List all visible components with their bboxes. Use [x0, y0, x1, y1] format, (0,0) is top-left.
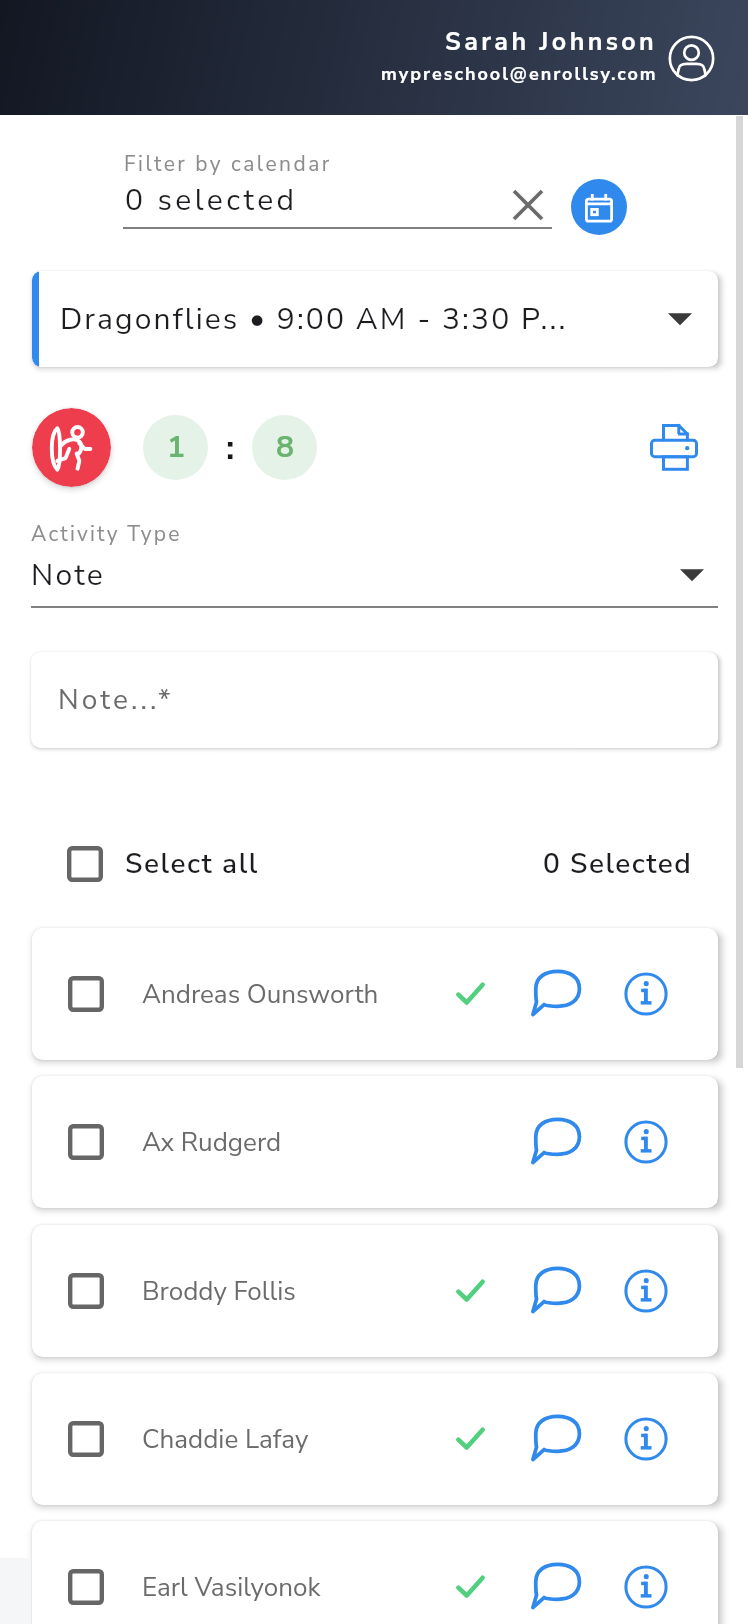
button[interactable]: Info: [616, 1112, 676, 1172]
staticText: Earl Vasilyonok: [142, 1570, 321, 1605]
staticText: Broddy Follis: [142, 1274, 296, 1309]
staticText: Andreas Ounsworth: [142, 977, 379, 1012]
button[interactable]: Message: [525, 964, 585, 1024]
button[interactable]: Info: [616, 1261, 676, 1321]
staticText: 8: [276, 427, 294, 468]
button[interactable]: Check out: [32, 408, 111, 487]
button[interactable]: Info: [616, 1409, 676, 1469]
button[interactable]: Ax Rudgerd: [32, 1076, 718, 1208]
staticText: Activity Type: [31, 520, 182, 549]
staticText: Note...*: [58, 681, 174, 719]
button[interactable]: Info: [616, 1557, 676, 1617]
staticText: 0 selected: [125, 180, 298, 221]
staticText: Note: [31, 555, 105, 596]
button[interactable]: Message: [525, 1409, 585, 1469]
button[interactable]: Andreas Ounsworth: [32, 928, 718, 1060]
staticText: 1: [167, 427, 185, 468]
button[interactable]: Account: [668, 35, 715, 82]
staticText: Dragonflies • 9:00 AM - 3:30 P...: [60, 299, 568, 340]
staticText: Select all: [125, 845, 259, 883]
button[interactable]: Dragonflies • 9:00 AM - 3:30 P...: [32, 271, 718, 367]
staticText: Sarah Johnson: [445, 25, 658, 59]
button[interactable]: Print: [636, 408, 712, 484]
button[interactable]: 1: [143, 415, 208, 480]
staticText: Ax Rudgerd: [142, 1125, 282, 1160]
button[interactable]: 8: [252, 415, 317, 480]
button[interactable]: Clear filter: [500, 176, 555, 231]
staticText: :: [226, 425, 235, 471]
staticText: Filter by calendar: [124, 150, 332, 179]
button[interactable]: Note: [31, 548, 718, 602]
staticText: 0 Selected: [543, 845, 693, 883]
button[interactable]: Chaddie Lafay: [32, 1373, 718, 1505]
button[interactable]: Note...*: [31, 652, 718, 748]
button[interactable]: Message: [525, 1261, 585, 1321]
button[interactable]: Broddy Follis: [32, 1225, 718, 1357]
button[interactable]: Earl Vasilyonok: [32, 1521, 718, 1624]
button[interactable]: Select all: [67, 843, 259, 885]
button[interactable]: Message: [525, 1557, 585, 1617]
button[interactable]: Info: [616, 964, 676, 1024]
staticText: mypreschool@enrollsy.com: [381, 62, 658, 87]
button[interactable]: Message: [525, 1112, 585, 1172]
staticText: Chaddie Lafay: [142, 1422, 309, 1457]
button[interactable]: Open calendar: [571, 179, 627, 235]
